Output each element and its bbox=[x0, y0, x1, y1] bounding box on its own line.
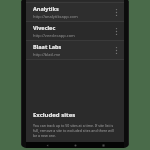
button[interactable]: Back bbox=[40, 142, 54, 148]
button[interactable]: Analytiks bbox=[26, 3, 124, 21]
staticText: Blaat Labs bbox=[33, 43, 62, 50]
button[interactable]: More options for Analytiks bbox=[111, 3, 121, 21]
staticText: Analytiks bbox=[33, 5, 59, 12]
button[interactable]: Blaat Labs bbox=[26, 41, 124, 59]
staticText: Viveclec bbox=[33, 24, 56, 31]
button[interactable]: Viveclec bbox=[26, 22, 124, 40]
staticText: http://veeclecapp.com bbox=[33, 33, 75, 38]
staticText: Excluded sites bbox=[33, 111, 76, 119]
button[interactable]: More options for Blaat Labs bbox=[111, 41, 121, 59]
staticText: You can track up to 50 sites at a time. … bbox=[33, 123, 118, 138]
button[interactable]: Recent apps bbox=[96, 142, 110, 148]
button[interactable]: More options for Viveclec bbox=[111, 22, 121, 40]
staticText: http://analytiksapp.com bbox=[33, 14, 78, 19]
staticText: http://blatl.me bbox=[33, 52, 61, 57]
button[interactable]: Home bbox=[68, 142, 82, 148]
